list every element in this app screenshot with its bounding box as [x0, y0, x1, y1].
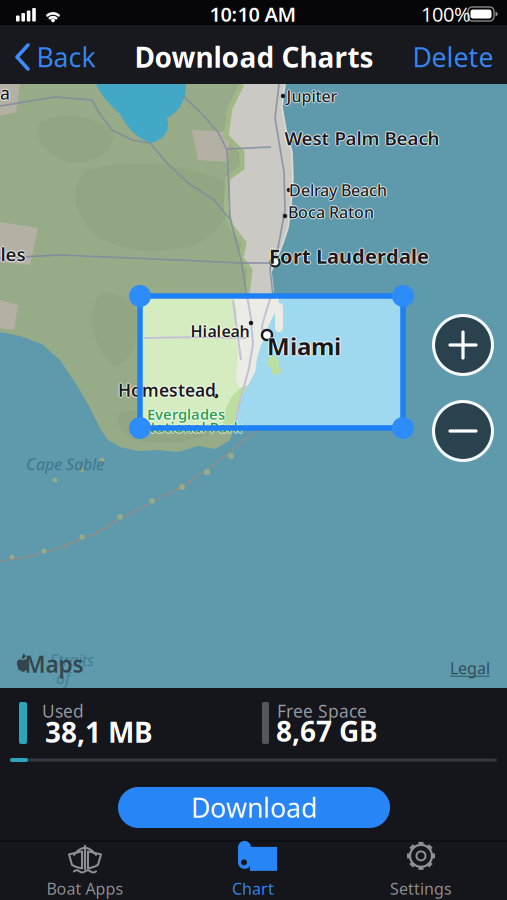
- staticText: Miami: [267, 331, 341, 363]
- staticText: Fort Lauderdale: [268, 243, 428, 269]
- staticText: Boca Raton: [289, 201, 375, 223]
- staticText: a: [0, 82, 10, 105]
- staticText: 10:10 AM: [209, 1, 296, 27]
- staticText: Homestead: [118, 377, 216, 400]
- staticText: Cape Sable: [26, 453, 104, 475]
- staticText: National Park: [143, 417, 242, 437]
- staticText: Free Space: [277, 699, 367, 722]
- staticText: les: [0, 243, 25, 267]
- staticText: Settings: [390, 878, 452, 899]
- staticText: Homestead: [117, 378, 215, 401]
- button[interactable]: Zoom in: [432, 314, 494, 376]
- staticText: West Palm Beach: [284, 127, 439, 151]
- staticText: Delray Beach: [289, 178, 387, 200]
- staticText: Boca Raton: [288, 202, 374, 224]
- button[interactable]: Settings: [337, 840, 505, 898]
- staticText: 100%: [421, 1, 471, 27]
- staticText: Legal: [450, 657, 490, 679]
- staticText: les: [0, 242, 25, 266]
- staticText: Jupiter: [287, 85, 338, 107]
- staticText: Everglades: [147, 405, 225, 425]
- staticText: Homestead: [118, 379, 216, 402]
- staticText: of: [56, 667, 70, 689]
- staticText: 8,67 GB: [276, 712, 378, 750]
- staticText: a: [0, 81, 10, 104]
- staticText: 38,1 MB: [45, 713, 153, 751]
- staticText: Chart: [232, 878, 274, 899]
- staticText: National Park: [144, 417, 243, 437]
- staticText: Download: [191, 790, 317, 825]
- button[interactable]: Back: [12, 38, 100, 76]
- staticText: a: [0, 81, 9, 104]
- staticText: Hialeah: [190, 319, 249, 341]
- staticText: Fort Lauderdale: [269, 243, 429, 269]
- staticText: Straits: [50, 649, 94, 671]
- button[interactable]: Delete: [398, 38, 507, 76]
- staticText: Jupiter: [286, 85, 337, 107]
- staticText: West Palm Beach: [284, 126, 439, 150]
- staticText: Jupiter: [285, 85, 336, 107]
- staticText: a: [0, 80, 10, 103]
- staticText: Fort Lauderdale: [269, 242, 429, 268]
- staticText: Hialeah: [190, 321, 249, 343]
- staticText: Boat Apps: [46, 878, 123, 899]
- staticText: Fort Lauderdale: [269, 244, 429, 270]
- staticText: Delray Beach: [289, 179, 387, 201]
- staticText: Everglades: [148, 404, 226, 424]
- staticText: les: [1, 242, 26, 266]
- staticText: Everglades: [147, 403, 225, 423]
- staticText: Maps: [24, 649, 83, 679]
- staticText: Delete: [412, 39, 493, 75]
- staticText: West Palm Beach: [284, 125, 439, 149]
- staticText: Jupiter: [286, 86, 337, 108]
- staticText: Hialeah: [189, 320, 248, 342]
- staticText: Used: [42, 699, 84, 722]
- staticText: Miami: [266, 330, 340, 362]
- staticText: Download Charts: [134, 38, 373, 76]
- staticText: Miami: [267, 329, 341, 361]
- button[interactable]: Legal: [445, 658, 495, 678]
- staticText: Delray Beach: [289, 180, 387, 202]
- staticText: les: [0, 242, 24, 266]
- button[interactable]: Zoom out: [432, 400, 494, 462]
- staticText: National Park: [143, 418, 242, 438]
- button[interactable]: Download: [118, 787, 390, 828]
- staticText: Boca Raton: [288, 200, 374, 222]
- staticText: Everglades: [147, 404, 225, 424]
- staticText: Delray Beach: [288, 179, 386, 201]
- staticText: Fort Lauderdale: [270, 243, 430, 269]
- staticText: a: [1, 81, 11, 104]
- staticText: Homestead: [118, 378, 216, 401]
- staticText: Hialeah: [190, 320, 249, 342]
- staticText: National Park: [143, 416, 242, 436]
- staticText: Boca Raton: [287, 201, 373, 223]
- staticText: Boca Raton: [288, 201, 374, 223]
- staticText: les: [0, 241, 25, 265]
- staticText: Homestead: [119, 378, 217, 401]
- button[interactable]: Chart: [169, 840, 337, 898]
- staticText: Delray Beach: [290, 179, 388, 201]
- staticText: West Palm Beach: [285, 126, 440, 150]
- staticText: Jupiter: [286, 84, 337, 106]
- staticText: National Park: [142, 417, 241, 437]
- button[interactable]: Boat Apps: [1, 840, 169, 898]
- staticText: Everglades: [146, 404, 224, 424]
- staticText: West Palm Beach: [283, 126, 438, 150]
- staticText: Hialeah: [191, 320, 250, 342]
- staticText: Back: [36, 39, 95, 75]
- staticText: Miami: [268, 330, 342, 362]
- staticText: Miami: [267, 330, 341, 362]
